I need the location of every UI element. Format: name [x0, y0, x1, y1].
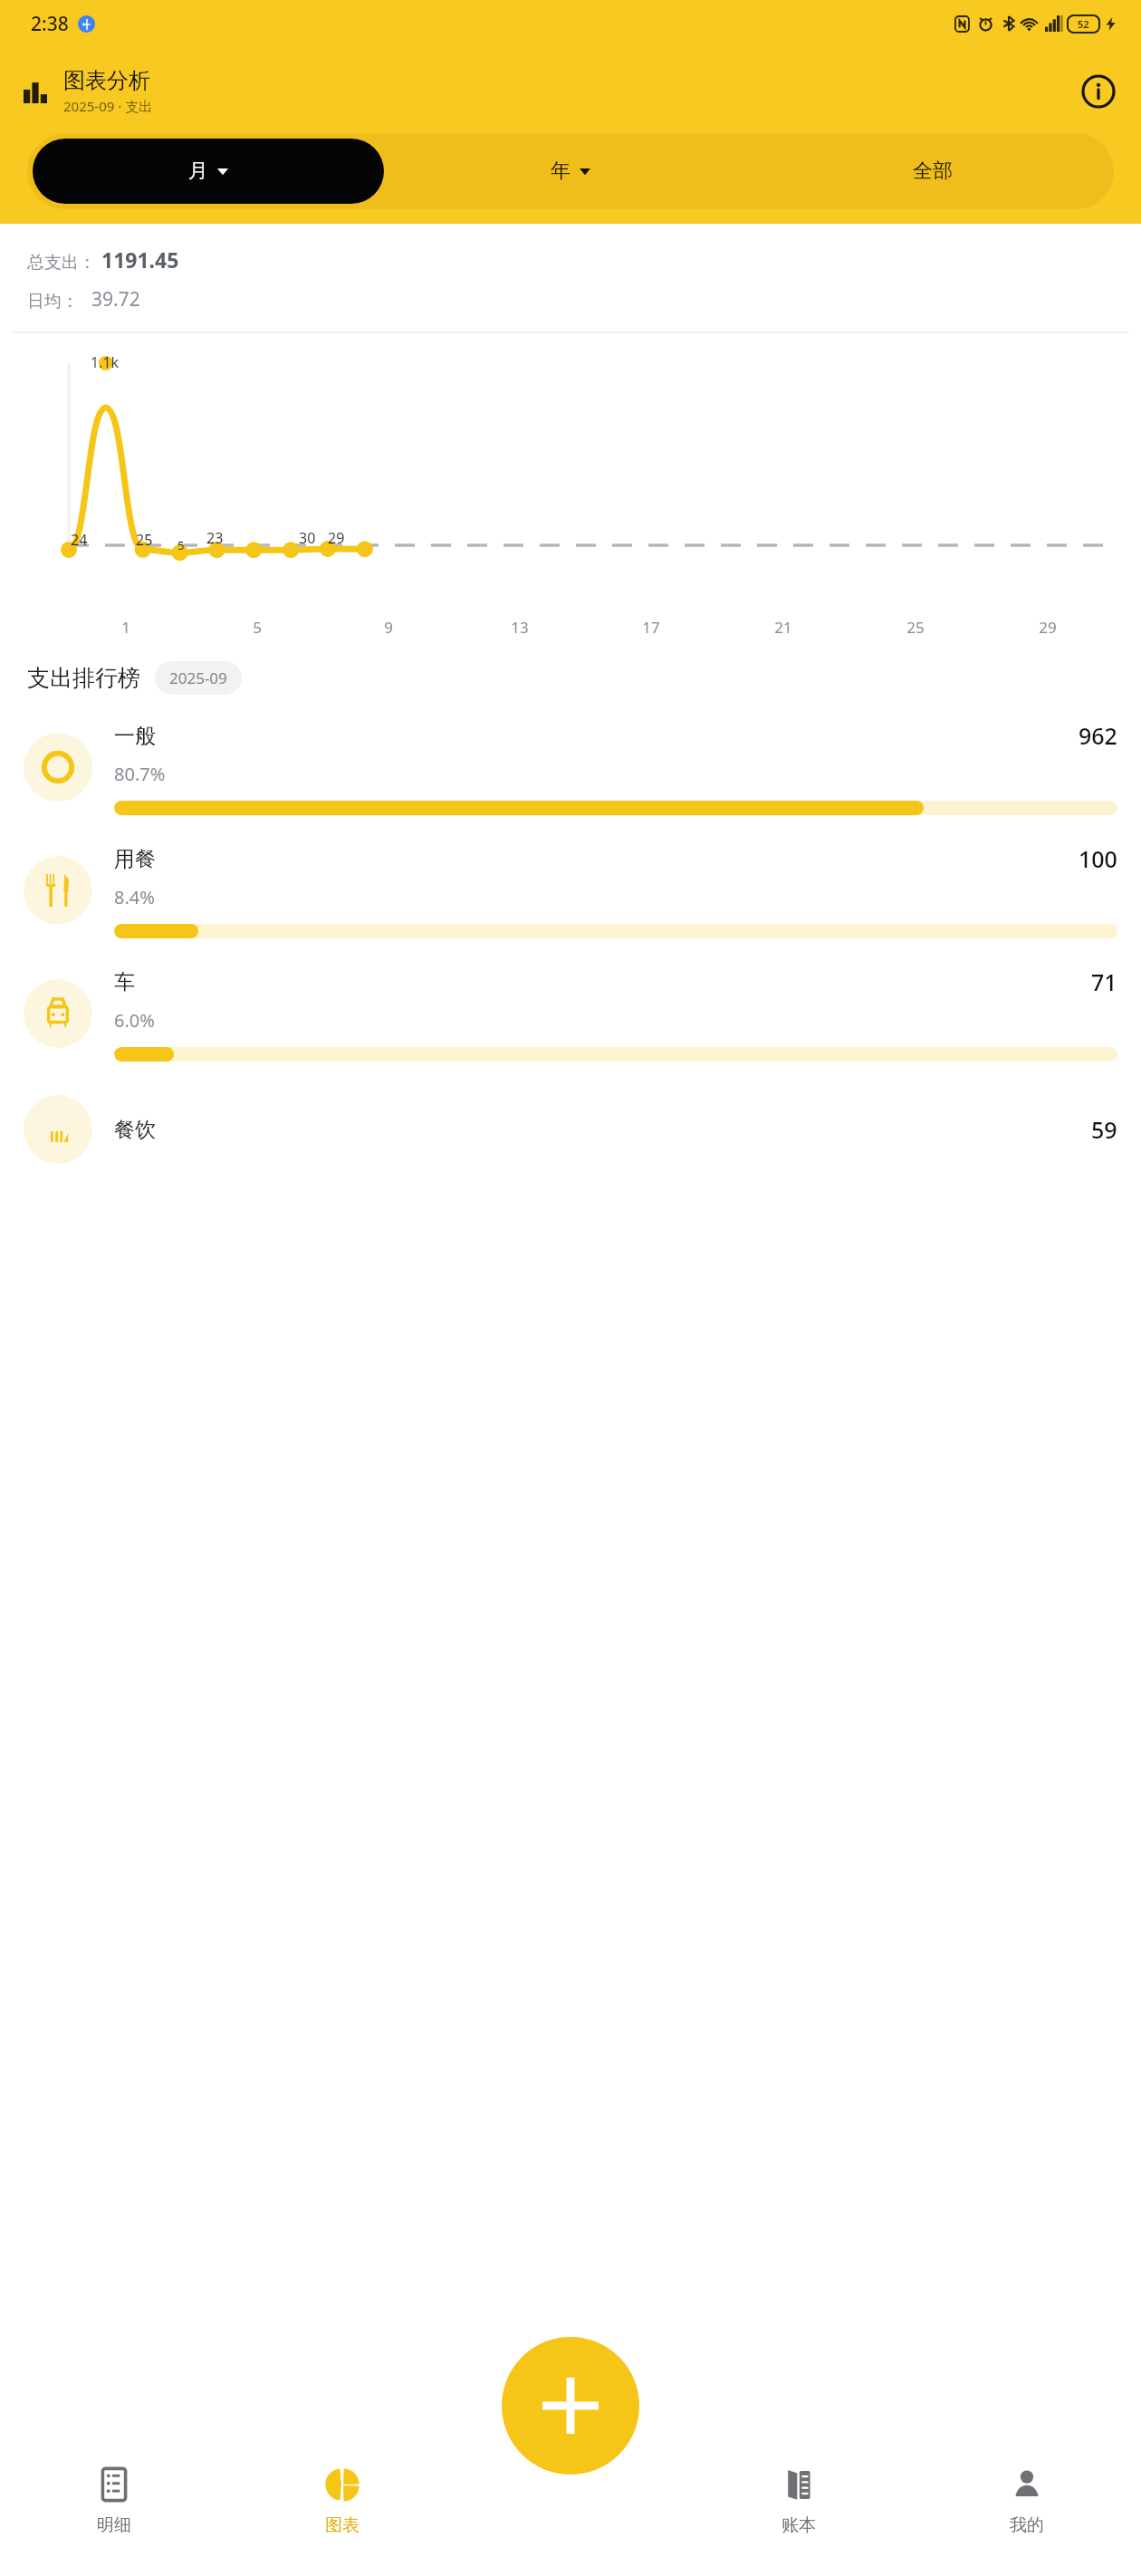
staticText: 39.72: [91, 286, 140, 312]
button[interactable]: 账本: [685, 2440, 913, 2576]
button[interactable]: Info: [1079, 72, 1117, 111]
staticText: 明细: [97, 2514, 131, 2536]
staticText: 71: [1091, 966, 1117, 997]
staticText: 2025-09: [169, 668, 227, 688]
staticText: 5: [177, 537, 185, 553]
button[interactable]: 月: [33, 139, 384, 204]
button[interactable]: 我的: [913, 2440, 1141, 2576]
staticText: 17: [642, 617, 660, 638]
staticText: 25: [136, 530, 153, 550]
staticText: 59: [1091, 1114, 1117, 1145]
staticText: 图表: [325, 2514, 360, 2536]
staticText: 9: [384, 617, 393, 638]
staticText: 100: [1079, 843, 1117, 874]
staticText: 80.7%: [114, 762, 166, 786]
staticText: 用餐: [114, 846, 156, 872]
staticText: 962: [1079, 720, 1117, 751]
staticText: 1: [121, 617, 130, 638]
staticText: 1191.45: [101, 245, 179, 274]
staticText: 支出排行榜: [27, 664, 140, 692]
button[interactable]: 明细: [0, 2440, 228, 2576]
staticText: 52: [1078, 17, 1089, 31]
staticText: 25: [906, 617, 925, 638]
button[interactable]: 用餐: [0, 829, 1141, 952]
staticText: 一般: [114, 723, 156, 749]
button[interactable]: 车: [0, 952, 1141, 1075]
button[interactable]: 图表: [228, 2440, 456, 2576]
staticText: 图表分析: [63, 67, 150, 94]
staticText: 账本: [781, 2514, 816, 2536]
staticText: 29: [328, 528, 345, 548]
staticText: 6.0%: [114, 1008, 155, 1033]
staticText: 2:38: [31, 11, 69, 37]
staticText: 我的: [1010, 2514, 1044, 2536]
staticText: 年: [551, 159, 570, 184]
button[interactable]: 全部: [752, 133, 1114, 209]
staticText: 13: [511, 617, 529, 638]
staticText: 2025-09 · 支出: [63, 97, 153, 115]
staticText: 车: [114, 969, 135, 995]
button[interactable]: Add: [502, 2337, 639, 2475]
staticText: 5: [253, 617, 262, 638]
staticText: 日均：: [27, 291, 79, 312]
staticText: 餐饮: [114, 1117, 156, 1143]
staticText: 21: [774, 617, 792, 638]
staticText: 1.1k: [91, 352, 120, 372]
staticText: 24: [71, 530, 88, 550]
staticText: 总支出：: [27, 252, 96, 274]
button[interactable]: 餐饮: [0, 1075, 1141, 1184]
staticText: 8.4%: [114, 885, 155, 909]
staticText: 全部: [913, 159, 953, 184]
button[interactable]: 一般: [0, 706, 1141, 829]
staticText: 23: [206, 528, 224, 548]
staticText: 30: [299, 528, 316, 548]
staticText: 月: [188, 159, 208, 184]
button[interactable]: 年: [389, 133, 752, 209]
staticText: 29: [1039, 617, 1057, 638]
